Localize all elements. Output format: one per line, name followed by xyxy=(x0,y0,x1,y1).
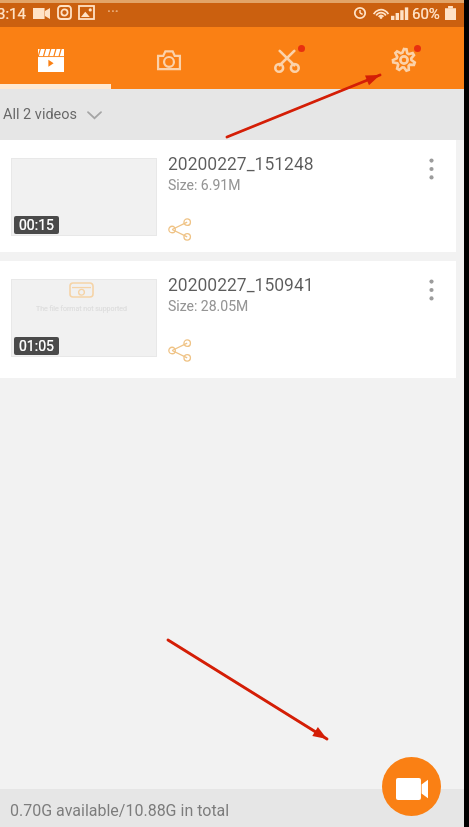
staticText: Size: 28.05M xyxy=(168,298,249,314)
button[interactable]: All 2 videos xyxy=(3,106,101,123)
staticText: 01:05 xyxy=(19,338,54,354)
button[interactable]: Videos xyxy=(0,27,109,89)
staticText: 0.70G available/10.88G in total xyxy=(10,801,230,820)
staticText: The file format not supported xyxy=(36,305,127,313)
staticText: 20200227_150941 xyxy=(168,275,314,296)
button[interactable]: More options xyxy=(413,270,449,310)
button[interactable]: Share xyxy=(165,214,195,244)
staticText: ··· xyxy=(107,3,119,21)
staticText: All 2 videos xyxy=(3,106,78,123)
button[interactable] xyxy=(0,140,456,252)
staticText: 60% xyxy=(412,5,440,23)
staticText: Size: 6.91M xyxy=(168,177,241,193)
button[interactable]: Tools xyxy=(228,27,345,89)
staticText: 20200227_151248 xyxy=(168,154,314,175)
button[interactable] xyxy=(0,261,456,378)
staticText: 00:15 xyxy=(19,217,54,233)
button[interactable]: Camera xyxy=(110,27,227,89)
button[interactable]: Settings xyxy=(345,27,462,89)
button[interactable]: Share xyxy=(165,335,195,365)
button[interactable]: Record video xyxy=(382,757,441,816)
button[interactable]: More options xyxy=(413,149,449,189)
staticText: 3:14 xyxy=(0,5,26,23)
